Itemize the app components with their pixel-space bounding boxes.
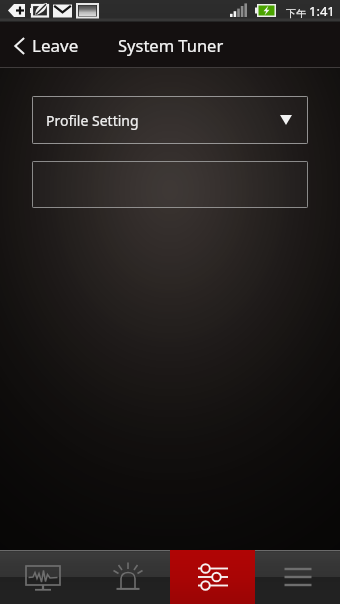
button[interactable]: Leave: [0, 28, 93, 63]
staticText: Profile Setting: [46, 111, 139, 130]
button[interactable]: Monitor: [0, 550, 85, 604]
button[interactable]: Alerts: [85, 550, 170, 604]
button[interactable]: Tuner: [170, 550, 255, 604]
staticText: Leave: [32, 34, 79, 57]
button[interactable]: Profile Setting: [32, 96, 308, 144]
staticText: 下午: [286, 7, 306, 20]
button[interactable]: [32, 161, 308, 208]
staticText: 1:41: [309, 2, 335, 20]
staticText: System Tuner: [118, 34, 224, 56]
button[interactable]: Menu: [255, 550, 340, 604]
